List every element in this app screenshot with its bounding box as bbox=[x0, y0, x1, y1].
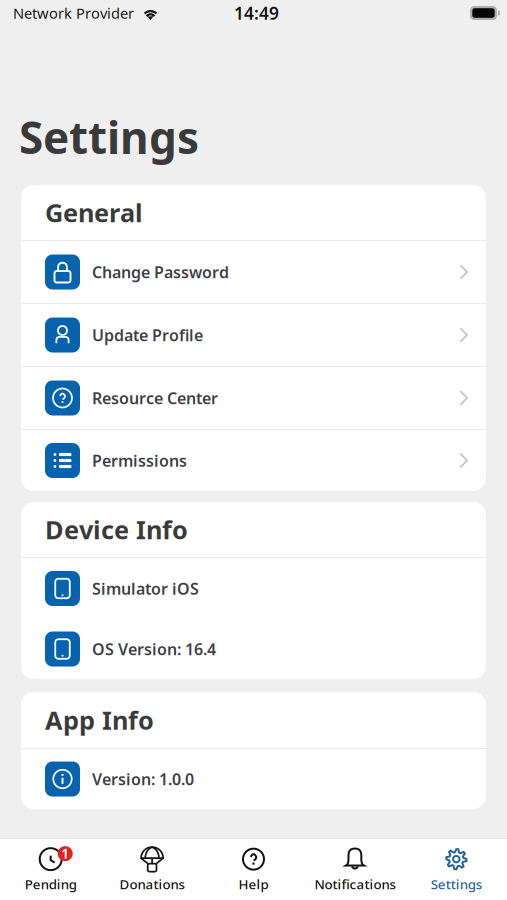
staticText: Resource Center bbox=[92, 387, 218, 409]
staticText: Network Provider bbox=[13, 3, 134, 23]
button[interactable]: Version: 1.0.0 bbox=[21, 749, 486, 809]
staticText: Notifications bbox=[314, 875, 395, 893]
staticText: Version: 1.0.0 bbox=[92, 768, 194, 790]
button[interactable]: Update Profile bbox=[21, 304, 486, 366]
staticText: OS Version: 16.4 bbox=[92, 638, 216, 660]
staticText: 14:49 bbox=[234, 1, 279, 24]
button[interactable]: OS Version: 16.4 bbox=[21, 619, 486, 679]
button[interactable]: Permissions bbox=[21, 430, 486, 491]
staticText: Settings bbox=[19, 108, 199, 166]
button[interactable]: Help bbox=[203, 839, 304, 900]
staticText: Permissions bbox=[92, 450, 187, 471]
staticText: Donations bbox=[120, 875, 185, 893]
button[interactable]: Simulator iOS bbox=[21, 558, 486, 619]
staticText: Help bbox=[238, 875, 268, 893]
staticText: Pending bbox=[25, 875, 77, 893]
staticText: App Info bbox=[45, 703, 154, 737]
button[interactable]: 1 bbox=[0, 839, 101, 900]
staticText: Settings bbox=[431, 875, 482, 893]
button[interactable]: Donations bbox=[101, 839, 203, 900]
button[interactable]: Settings bbox=[406, 839, 507, 900]
staticText: Update Profile bbox=[92, 324, 203, 346]
staticText: Simulator iOS bbox=[92, 578, 199, 599]
staticText: Change Password bbox=[92, 261, 229, 283]
button[interactable]: Resource Center bbox=[21, 367, 486, 429]
staticText: 1 bbox=[61, 845, 69, 862]
staticText: Device Info bbox=[45, 513, 188, 546]
button[interactable]: Notifications bbox=[304, 839, 406, 900]
button[interactable]: Change Password bbox=[21, 241, 486, 303]
staticText: General bbox=[45, 196, 143, 229]
